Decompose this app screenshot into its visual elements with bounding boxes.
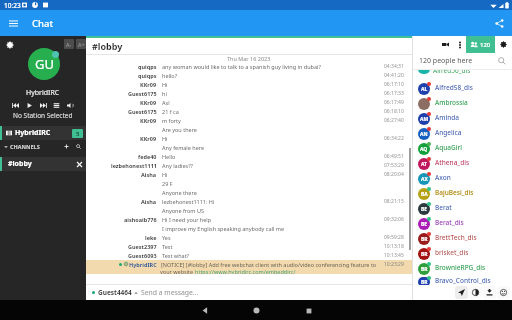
staticText: BE (421, 221, 428, 228)
button[interactable]: AX (413, 170, 512, 185)
staticText: Any ladies?? (162, 162, 383, 169)
staticText: BajuBesi_dis (435, 188, 474, 197)
staticText: fede40 (138, 153, 157, 160)
staticText: 29 F (162, 180, 383, 187)
staticText: hi (162, 90, 383, 97)
staticText: BA (421, 191, 428, 198)
button[interactable]: Settings (4, 39, 16, 51)
staticText: Alfred56_dis (433, 70, 471, 75)
staticText: Axon (435, 173, 451, 182)
staticText: #lobby (92, 40, 123, 52)
staticText: AX (421, 176, 428, 183)
staticText: Hello (162, 153, 383, 160)
button[interactable]: Theme (469, 286, 482, 299)
button[interactable]: Close channel (76, 161, 83, 168)
button[interactable]: Open navigation drawer (4, 14, 22, 32)
staticText: CHANNELS (10, 143, 63, 150)
staticText: Guest6175 (128, 90, 157, 97)
staticText: Guest4464 (98, 288, 132, 297)
staticText: Anyone from US (162, 207, 383, 214)
button[interactable]: BR (413, 245, 512, 260)
button[interactable]: vol (66, 101, 75, 110)
button[interactable]: A- (64, 39, 74, 49)
button[interactable]: AL (413, 80, 512, 95)
button[interactable]: Search channels (75, 143, 82, 150)
staticText: KKr09 (140, 81, 157, 88)
staticText: quiqps (138, 63, 157, 70)
button[interactable]: AQ (413, 140, 512, 155)
staticText: Ambrossia (435, 98, 468, 107)
staticText: 21 f ca (162, 108, 383, 115)
staticText: 09:32:06 (384, 216, 404, 223)
staticText: 10:13:18 (384, 243, 404, 250)
staticText: BrownieRPG_dis (435, 263, 486, 272)
staticText: Aminda (435, 113, 459, 122)
staticText: 06:17:10 (384, 81, 404, 88)
staticText: 10:13:45 (384, 252, 404, 259)
button[interactable]: list (52, 101, 61, 110)
staticText: 08:20:04 (384, 171, 404, 178)
staticText: KKr09 (140, 117, 157, 124)
staticText: Berat_dis (435, 218, 464, 227)
staticText: 07:53:29 (384, 162, 404, 169)
button[interactable]: A+ (76, 39, 86, 49)
staticText: lezbehonest1111: Hi (162, 198, 383, 205)
button[interactable]: Send (455, 286, 468, 299)
staticText: Anyone there (162, 189, 383, 196)
button[interactable]: More options (453, 38, 466, 51)
button[interactable]: Guest4464 (86, 285, 412, 300)
button[interactable]: Emoji (497, 286, 510, 299)
staticText: Berat (435, 203, 452, 212)
staticText: lezbehonest1111 (111, 162, 157, 169)
staticText: 120 people here (419, 56, 473, 66)
button[interactable]: Back (198, 304, 211, 317)
button[interactable]: AN (413, 125, 512, 140)
staticText: Angelica (435, 128, 462, 137)
staticText: AN (420, 131, 428, 138)
button[interactable]: Recent apps (302, 304, 315, 317)
button[interactable]: next (39, 101, 48, 110)
button[interactable]: BR (413, 275, 512, 285)
staticText: 5 (76, 130, 80, 138)
staticText: No Station Selected (13, 111, 73, 120)
button[interactable]: HybridIRC (0, 126, 86, 140)
staticText: Hi (162, 135, 383, 142)
button[interactable]: Home (250, 304, 263, 317)
button[interactable]: BR (413, 230, 512, 245)
button[interactable]: Share (490, 14, 508, 32)
button[interactable]: Channel settings (495, 36, 512, 53)
button[interactable]: BA (413, 185, 512, 200)
button[interactable]: 120 people (466, 36, 495, 53)
button[interactable]: Ambrossia (413, 95, 512, 110)
staticText: https://www.hybridirc.com/embeddirc/ (195, 268, 296, 274)
staticText: Athena_dis (435, 158, 470, 167)
button[interactable]: BR (413, 260, 512, 275)
staticText: Chat (32, 17, 54, 30)
staticText: KKr09 (140, 99, 157, 106)
button[interactable]: #lobby (0, 157, 86, 171)
button[interactable]: 120 people here (413, 53, 512, 69)
button[interactable]: prev (11, 101, 20, 110)
staticText: Guest6093 (128, 252, 157, 259)
button[interactable]: AM (413, 110, 512, 125)
staticText: 06:18:10 (384, 108, 404, 115)
button[interactable]: Add channel (63, 143, 70, 150)
button[interactable]: Start video call (438, 37, 453, 52)
staticText: AM (420, 116, 429, 123)
button[interactable]: play (25, 101, 34, 110)
button[interactable]: Upload file (483, 286, 496, 299)
staticText: Test what? (162, 252, 383, 259)
button[interactable]: AT (413, 155, 512, 170)
button[interactable]: BE (413, 215, 512, 230)
staticText: Aisha (141, 198, 157, 205)
staticText: AQ (420, 146, 428, 153)
staticText: Hi (162, 171, 383, 178)
staticText: BE (421, 206, 428, 213)
button[interactable]: BE (413, 200, 512, 215)
staticText: leke (145, 234, 157, 241)
staticText: Send a message... (141, 288, 199, 297)
staticText: BR (421, 236, 428, 243)
staticText: 08:21:15 (384, 198, 404, 205)
other: Search people (495, 54, 509, 68)
staticText: Any female here (162, 144, 383, 151)
